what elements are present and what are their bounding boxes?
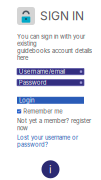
staticText: Lost your username or password? [17, 134, 78, 148]
button[interactable]: Lost your username or password? [17, 134, 78, 148]
staticText: Remember me [23, 108, 62, 115]
staticText: Username/email [19, 68, 65, 75]
button[interactable]: Login [17, 97, 84, 104]
button[interactable]: Information [41, 160, 59, 178]
staticText: Login [19, 97, 35, 104]
staticText: Password [19, 79, 47, 86]
button[interactable]: Username/email [17, 68, 84, 75]
staticText: ✓ [17, 109, 21, 114]
staticText: You can sign in with your existing guide… [17, 33, 92, 61]
staticText: SIGN IN [40, 9, 84, 23]
staticText: i [49, 163, 52, 176]
button[interactable]: Password [17, 79, 84, 86]
staticText: Not yet a member? register now [17, 117, 91, 132]
button[interactable]: ✓ [17, 108, 84, 115]
